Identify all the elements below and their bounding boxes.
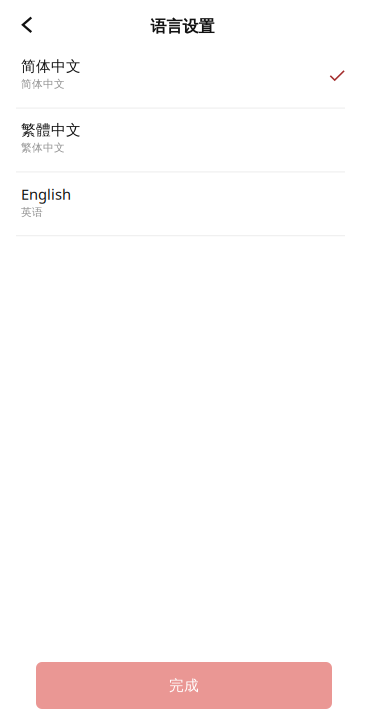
button[interactable]: 简体中文 (0, 45, 368, 109)
button[interactable]: 完成 (36, 662, 332, 709)
staticText: 繁體中文 (21, 121, 81, 139)
staticText: 英语 (21, 206, 43, 219)
staticText: 简体中文 (21, 77, 65, 90)
button[interactable]: 繁體中文 (0, 109, 368, 172)
button[interactable]: English (0, 172, 368, 236)
button[interactable]: Back (0, 0, 54, 44)
staticText: 简体中文 (21, 57, 81, 75)
staticText: 完成 (169, 676, 199, 694)
staticText: 繁体中文 (21, 141, 65, 154)
staticText: English (21, 184, 71, 204)
staticText: 语言设置 (150, 17, 214, 36)
